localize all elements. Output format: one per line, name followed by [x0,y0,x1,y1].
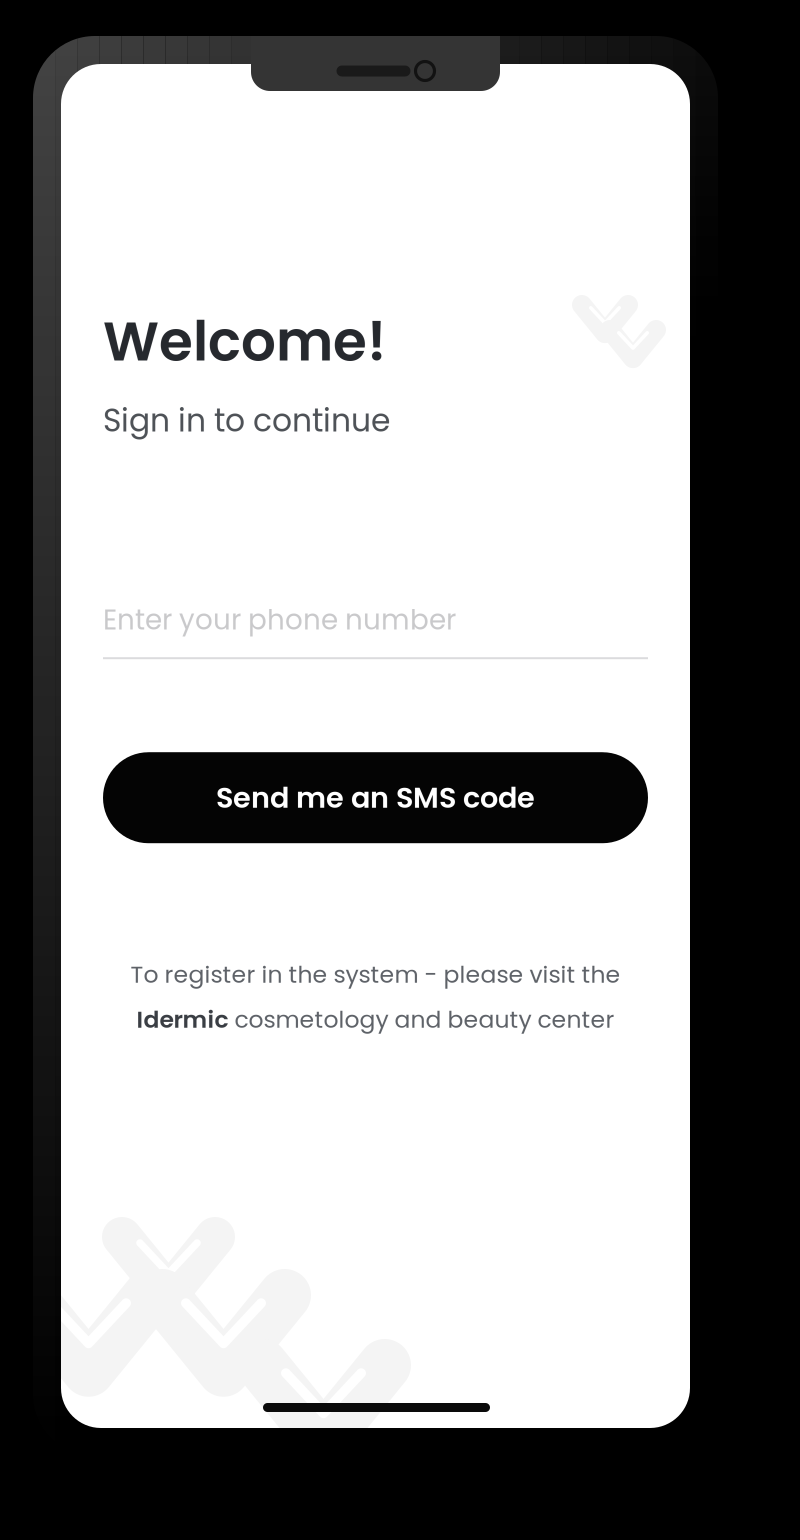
staticText: Sign in to continue [103,398,390,442]
staticText: cosmetology and beauty center [228,1003,614,1036]
staticText: Idermic [136,1003,228,1036]
button[interactable]: Enter your phone number [103,600,648,659]
staticText: Welcome! [103,303,386,379]
staticText: Enter your phone number [103,600,456,639]
button[interactable]: Send me an SMS code [103,752,648,843]
staticText: Send me an SMS code [216,778,535,818]
staticText: To register in the system - please visit… [130,958,620,991]
